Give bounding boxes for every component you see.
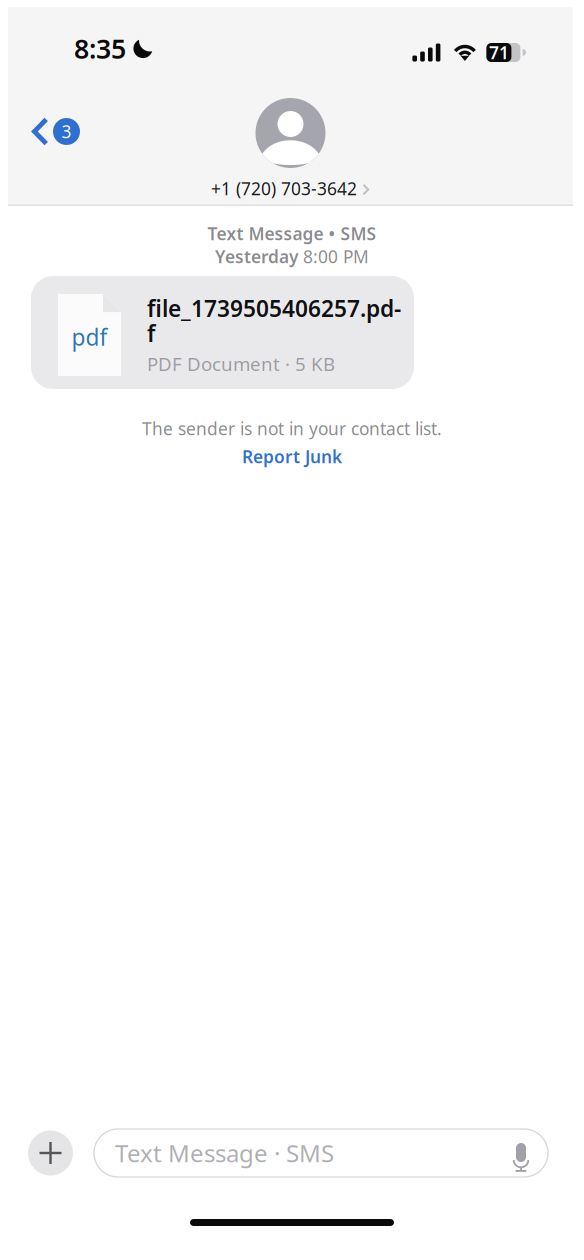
staticText: file_1739505406257.pdf	[147, 293, 401, 348]
staticText: 8:00 PM	[303, 245, 369, 268]
staticText: pdf	[71, 322, 107, 352]
button[interactable]: Report Junk	[242, 445, 342, 468]
button[interactable]: Contact info	[211, 168, 370, 204]
staticText: PDF Document · 5 KB	[147, 351, 335, 376]
staticText: Yesterday	[215, 245, 298, 268]
staticText: +1 (720) 703-3642	[211, 177, 357, 200]
staticText: Report Junk	[242, 445, 342, 468]
staticText: Text Message • SMS	[207, 222, 376, 245]
staticText: 71	[489, 41, 509, 64]
staticText: 8:35	[74, 31, 126, 66]
button[interactable]: Dictate	[510, 1138, 532, 1168]
staticText: 3	[61, 120, 71, 143]
button[interactable]: Add attachment	[28, 1130, 73, 1175]
staticText: Text Message · SMS	[115, 1137, 334, 1169]
button[interactable]: Back, 3 unread	[8, 105, 94, 158]
button[interactable]: pdf	[31, 276, 414, 389]
staticText: The sender is not in your contact list.	[142, 417, 442, 440]
